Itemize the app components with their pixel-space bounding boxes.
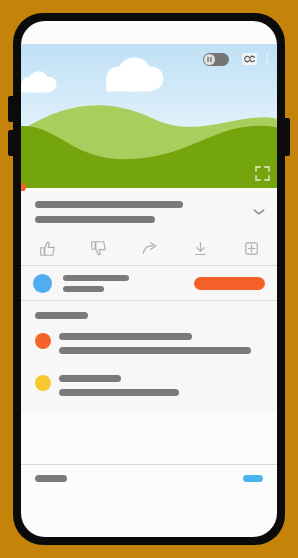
button[interactable]: Send bbox=[243, 475, 263, 482]
button[interactable] bbox=[21, 333, 277, 354]
button[interactable]: Like bbox=[21, 231, 73, 265]
button[interactable]: Save bbox=[226, 231, 277, 265]
button[interactable]: Pause bbox=[203, 53, 229, 66]
button[interactable]: Subscribe bbox=[194, 277, 265, 290]
button[interactable]: Fullscreen bbox=[256, 167, 269, 180]
button[interactable]: Share bbox=[124, 231, 175, 265]
button[interactable]: Dislike bbox=[73, 231, 124, 265]
button[interactable]: Subscribe bbox=[21, 266, 277, 300]
button[interactable]: Captions bbox=[242, 53, 257, 65]
button[interactable]: Download bbox=[175, 231, 226, 265]
button[interactable] bbox=[21, 375, 277, 396]
button[interactable]: More options bbox=[261, 52, 273, 66]
button[interactable]: Expand description bbox=[251, 204, 267, 220]
